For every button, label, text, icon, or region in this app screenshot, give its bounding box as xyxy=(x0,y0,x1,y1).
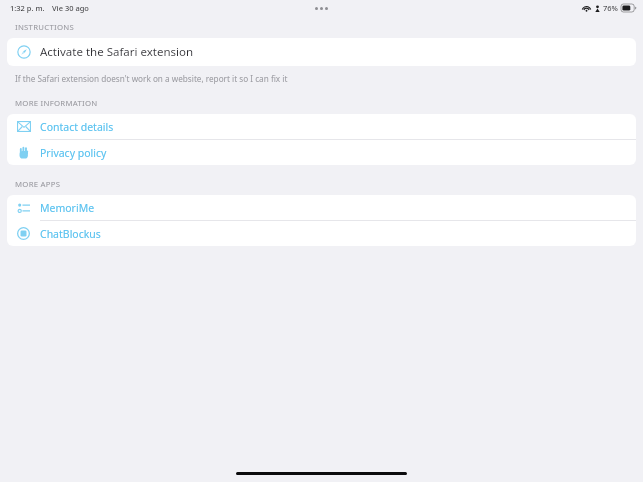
button[interactable]: Privacy policy xyxy=(7,140,636,165)
staticText: ChatBlockus xyxy=(40,227,101,241)
staticText: Privacy policy xyxy=(40,146,107,160)
button[interactable]: MemoriMe xyxy=(7,195,636,220)
staticText: MORE APPS xyxy=(15,179,61,190)
staticText: Contact details xyxy=(40,120,114,134)
staticText: 76% xyxy=(603,3,618,13)
staticText: If the Safari extension doesn't work on … xyxy=(15,73,288,84)
button[interactable]: ChatBlockus xyxy=(7,221,636,246)
staticText: Vie 30 ago xyxy=(52,3,89,13)
staticText: Activate the Safari extension xyxy=(40,44,194,60)
button[interactable]: Activate the Safari extension xyxy=(7,38,636,66)
staticText: 1:32 p. m. xyxy=(10,3,45,13)
button[interactable]: Contact details xyxy=(7,114,636,139)
staticText: MORE INFORMATION xyxy=(15,98,98,109)
staticText: MemoriMe xyxy=(40,201,95,215)
staticText: INSTRUCTIONS xyxy=(15,22,74,33)
